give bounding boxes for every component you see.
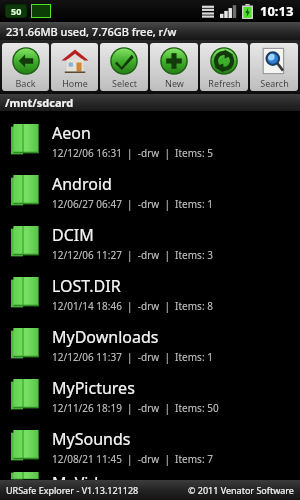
staticText: Home [62,77,88,89]
staticText: DCIM [52,224,94,246]
staticText: Refresh [208,77,241,89]
staticText: MyDownloads [52,326,159,348]
staticText: 12/11/26 18:19 | -drw | Items: 50 [52,401,219,415]
staticText: Search [260,77,289,89]
button[interactable]: Refresh [200,43,248,91]
staticText: /mnt/sdcard [5,95,74,110]
button[interactable]: MyVideos [0,472,300,480]
staticText: 12/12/06 11:37 | -drw | Items: 1 [52,350,213,364]
staticText: 12/01/14 18:46 | -drw | Items: 8 [52,299,213,313]
button[interactable]: MyDownloads [0,319,300,370]
staticText: © 2011 Venator Software [188,484,294,496]
staticText: New [165,77,184,89]
staticText: 12/06/27 06:47 | -drw | Items: 1 [52,197,213,211]
staticText: LOST.DIR [52,275,121,297]
button[interactable]: MySounds [0,421,300,472]
staticText: 231.66MB used, 7.76GB free, r/w [6,24,177,39]
staticText: Aeon [52,122,91,144]
staticText: Back [15,77,36,89]
staticText: MyVideos [52,472,125,480]
staticText: Android [52,173,112,195]
button[interactable]: Aeon [0,115,300,166]
button[interactable]: New [150,43,198,91]
button[interactable]: Android [0,166,300,217]
button[interactable]: LOST.DIR [0,268,300,319]
button[interactable]: Back [2,43,49,91]
button[interactable]: Search [250,43,298,91]
staticText: MySounds [52,428,131,450]
staticText: 12/12/06 16:31 | -drw | Items: 5 [52,146,213,160]
button[interactable]: MyPictures [0,370,300,421]
staticText: 12/12/06 11:27 | -drw | Items: 3 [52,248,213,262]
staticText: MyPictures [52,377,135,399]
staticText: 12/08/21 11:45 | -drw | Items: 7 [52,452,213,466]
button[interactable]: Home [51,43,98,91]
button[interactable]: Select [100,43,148,91]
staticText: Select [112,77,137,89]
staticText: 10:13 [260,2,294,20]
button[interactable]: DCIM [0,217,300,268]
staticText: URSafe Explorer - V1.13.121128 [6,484,139,496]
staticText: 50 [11,5,22,17]
